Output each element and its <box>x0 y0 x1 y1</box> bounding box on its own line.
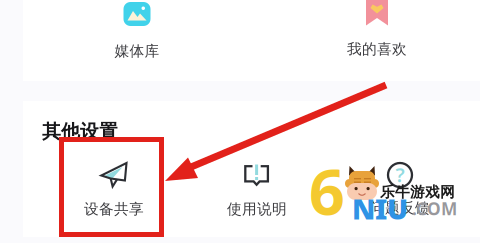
staticText: 其他设置 <box>42 120 118 143</box>
staticText: NIU <box>352 190 408 227</box>
button[interactable]: 设备共享 <box>43 159 185 218</box>
button[interactable]: ? <box>329 163 471 217</box>
button[interactable]: 媒体库 <box>66 2 208 60</box>
staticText: .COM <box>412 197 457 220</box>
staticText: 媒体库 <box>114 42 159 60</box>
staticText: 使用说明 <box>227 200 287 218</box>
button[interactable]: 使用说明 <box>186 164 328 218</box>
staticText: 问题反馈 <box>370 199 430 217</box>
staticText: 设备共享 <box>84 200 144 218</box>
staticText: ? <box>395 161 404 188</box>
staticText: 6 <box>309 149 345 232</box>
staticText: 乐牛游戏网 <box>380 183 455 201</box>
button[interactable]: 我的喜欢 <box>306 0 448 58</box>
staticText: 我的喜欢 <box>347 40 407 58</box>
